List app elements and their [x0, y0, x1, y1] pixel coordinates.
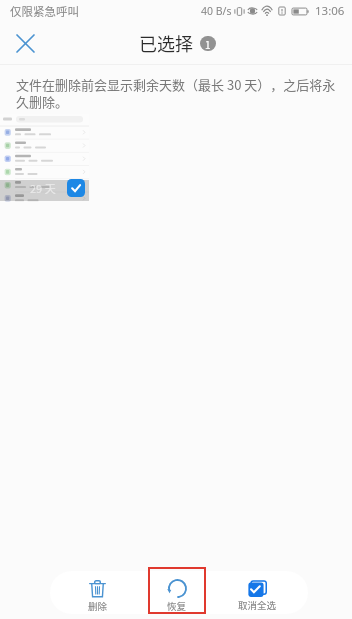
button[interactable]: Screenshot thumbnail, selected — [0, 114, 89, 201]
staticText: 40 B/s — [201, 4, 232, 18]
button[interactable]: 取消全选 — [217, 571, 297, 614]
button[interactable]: 恢复 — [137, 571, 217, 614]
staticText: 29 天 — [30, 180, 56, 196]
staticText: 13:06 — [315, 3, 345, 19]
button[interactable]: 删除 — [58, 571, 137, 614]
staticText: 删除 — [88, 599, 108, 613]
staticText: 仅限紧急呼叫 — [10, 3, 79, 20]
staticText: 取消全选 — [238, 598, 277, 612]
staticText: 恢复 — [167, 599, 187, 613]
staticText: 文件在删除前会显示剩余天数（最长 30 天），之后将永久删除。 — [16, 75, 347, 110]
button[interactable]: Close — [7, 25, 44, 62]
staticText: 已选择 — [139, 30, 193, 56]
staticText: 1 — [205, 37, 211, 51]
